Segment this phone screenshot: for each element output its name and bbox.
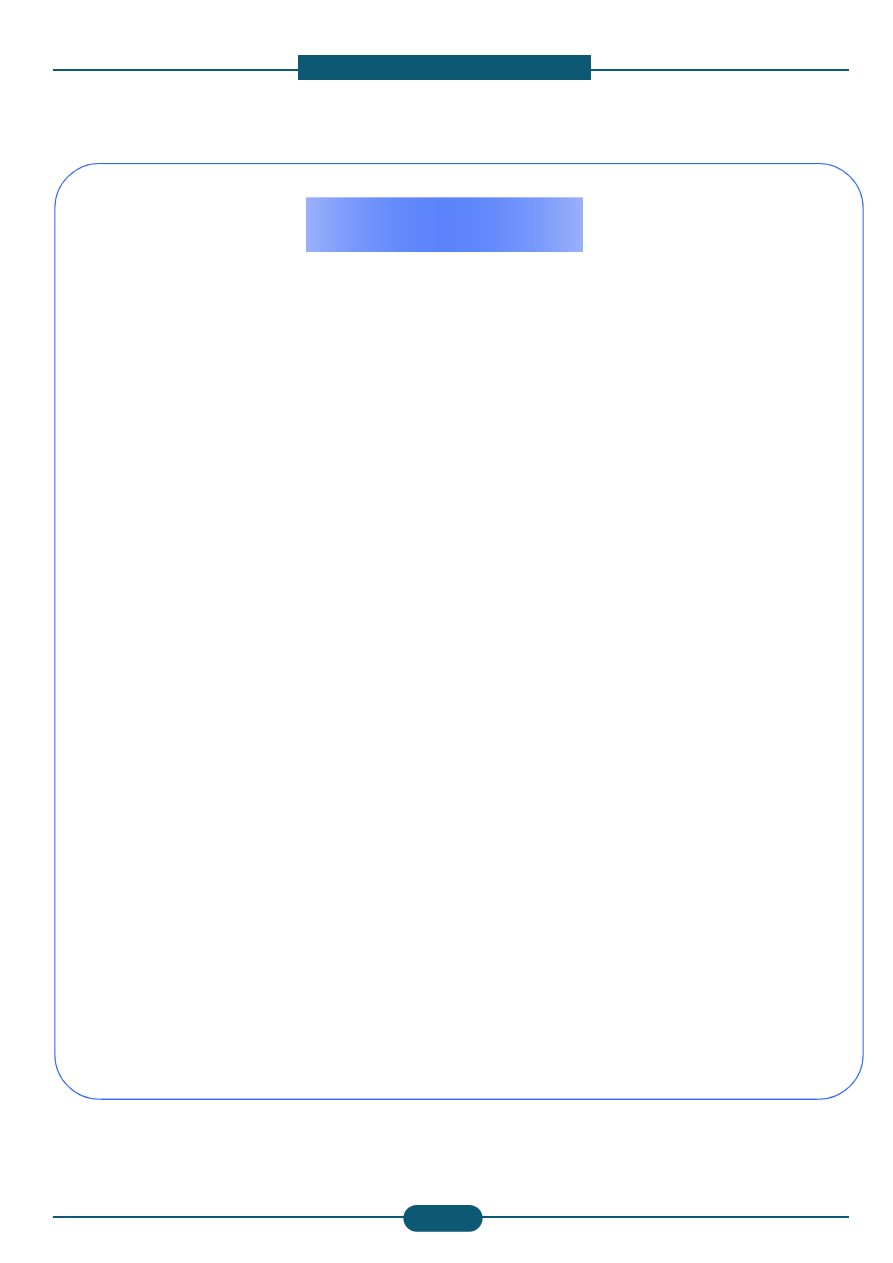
button[interactable]: Action [403, 1205, 483, 1232]
button[interactable]: Card [55, 164, 863, 1100]
button[interactable]: Banner [306, 197, 583, 252]
